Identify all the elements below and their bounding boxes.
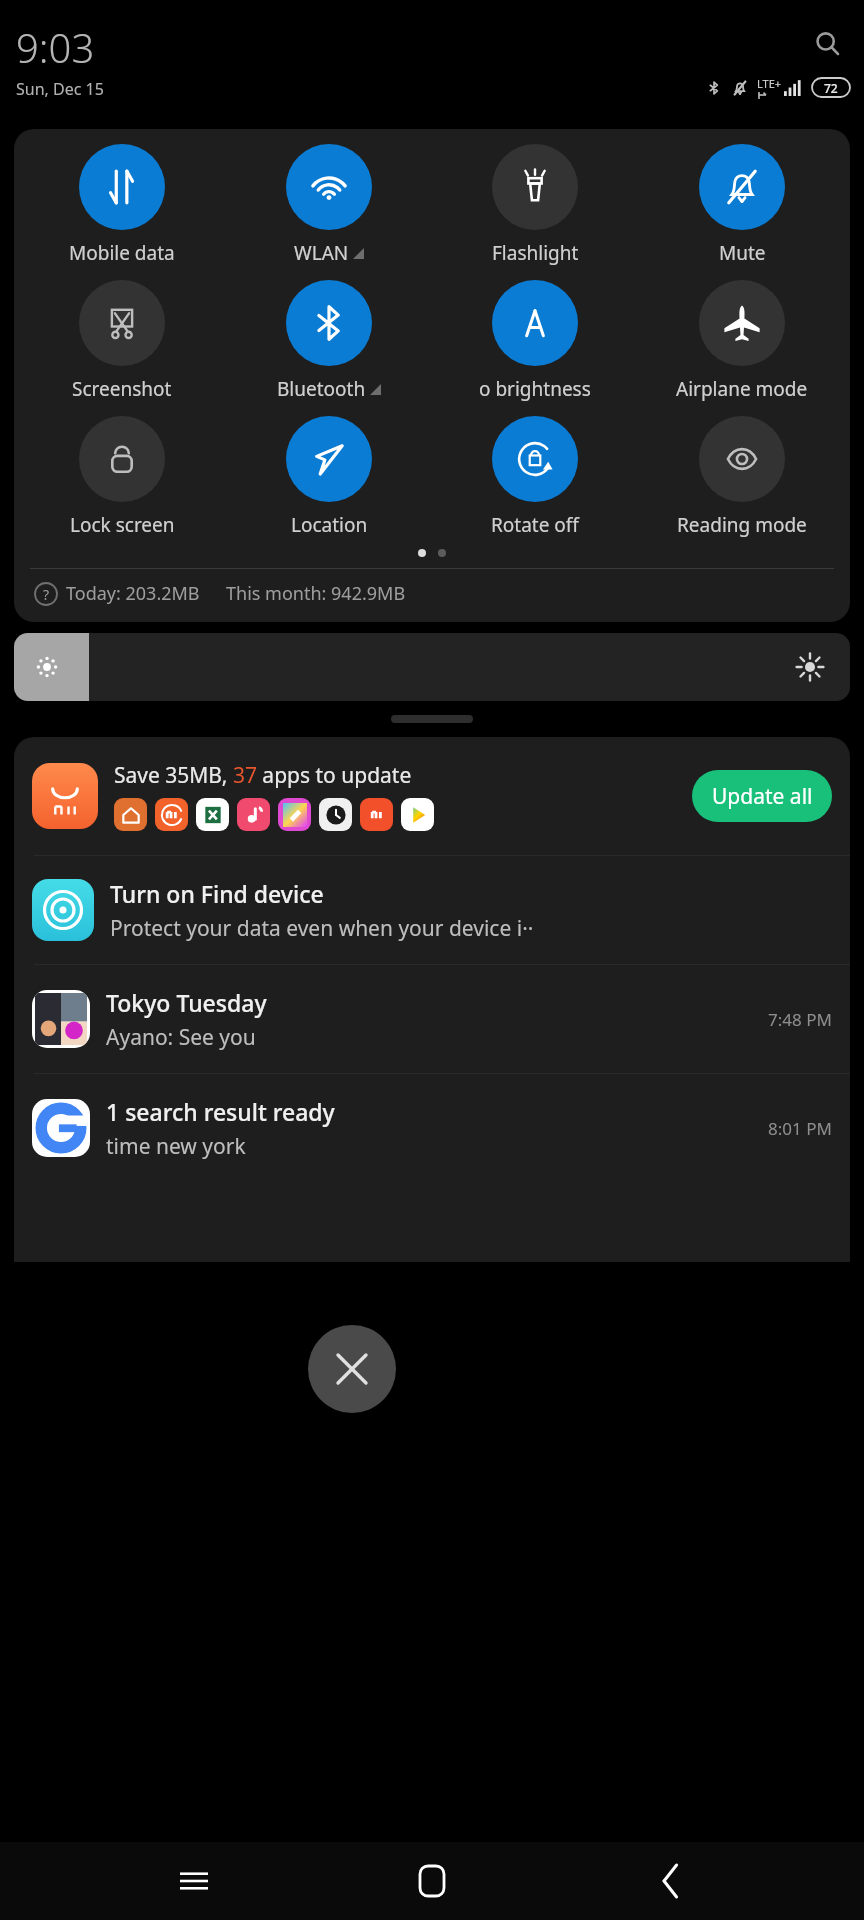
button[interactable]: Recents bbox=[150, 1842, 238, 1920]
staticText: LTE+ bbox=[757, 76, 782, 91]
staticText: Reading mode bbox=[677, 512, 807, 538]
button[interactable]: Update all bbox=[692, 770, 832, 822]
button[interactable]: Brightness bbox=[14, 633, 850, 701]
button[interactable]: Turn on Find device bbox=[14, 856, 850, 964]
button[interactable]: Mobile data bbox=[24, 144, 220, 266]
button[interactable]: Back bbox=[626, 1842, 714, 1920]
staticText: Mute bbox=[719, 240, 766, 266]
button[interactable]: Search bbox=[806, 22, 850, 66]
button[interactable]: Lock screen bbox=[24, 416, 220, 538]
staticText: Airplane mode bbox=[676, 376, 808, 402]
button[interactable]: WLAN bbox=[231, 144, 427, 266]
staticText: Save 35MB, 37 apps to update bbox=[114, 761, 412, 790]
staticText: Flashlight bbox=[492, 240, 579, 266]
staticText: Rotate off bbox=[491, 512, 579, 538]
button[interactable]: Flashlight bbox=[437, 144, 633, 266]
staticText: Location bbox=[291, 512, 368, 538]
staticText: Bluetooth bbox=[277, 376, 366, 402]
button[interactable]: Location bbox=[231, 416, 427, 538]
staticText: 1 search result ready bbox=[106, 1096, 335, 1127]
button[interactable]: Rotate off bbox=[437, 416, 633, 538]
button[interactable]: Screenshot bbox=[24, 280, 220, 402]
staticText: Protect your data even when your device … bbox=[110, 914, 534, 943]
staticText: time new york bbox=[106, 1132, 246, 1161]
button[interactable]: o brightness bbox=[437, 280, 633, 402]
button[interactable]: Bluetooth bbox=[231, 280, 427, 402]
staticText: Turn on Find device bbox=[110, 878, 324, 909]
staticText: 72 bbox=[824, 80, 838, 96]
staticText: o brightness bbox=[479, 376, 591, 402]
staticText: 9:03 bbox=[16, 20, 95, 74]
button[interactable]: Mute bbox=[644, 144, 840, 266]
staticText: Screenshot bbox=[72, 376, 172, 402]
button[interactable]: Airplane mode bbox=[644, 280, 840, 402]
staticText: WLAN bbox=[294, 240, 349, 266]
button[interactable]: 1 search result ready bbox=[14, 1074, 850, 1182]
staticText: Mobile data bbox=[69, 240, 175, 266]
staticText: Today: 203.2MB bbox=[66, 581, 200, 606]
button[interactable]: ? bbox=[14, 581, 850, 606]
staticText: Ayano: See you bbox=[106, 1023, 256, 1052]
staticText: ? bbox=[43, 585, 50, 604]
button[interactable]: Home bbox=[388, 1842, 476, 1920]
staticText: Sun, Dec 15 bbox=[16, 78, 104, 100]
button[interactable]: Save 35MB, 37 apps to update bbox=[14, 737, 850, 855]
staticText: This month: 942.9MB bbox=[226, 581, 406, 606]
button[interactable]: Tokyo Tuesday bbox=[14, 965, 850, 1073]
staticText: Tokyo Tuesday bbox=[106, 987, 267, 1018]
staticText: Update all bbox=[712, 782, 813, 811]
staticText: 7:48 PM bbox=[768, 1008, 832, 1031]
button[interactable]: Clear all notifications bbox=[308, 1325, 396, 1413]
staticText: 8:01 PM bbox=[768, 1117, 832, 1140]
staticText: Lock screen bbox=[70, 512, 175, 538]
button[interactable]: Reading mode bbox=[644, 416, 840, 538]
